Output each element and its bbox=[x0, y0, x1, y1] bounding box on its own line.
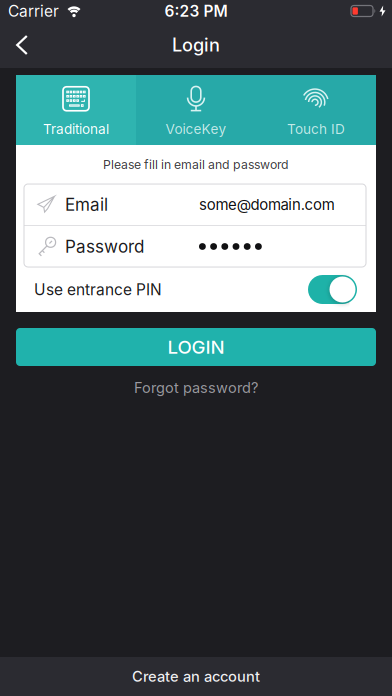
staticText: some@domain.com bbox=[199, 195, 335, 214]
button[interactable]: Password bbox=[24, 226, 366, 267]
staticText: Create an account bbox=[132, 668, 260, 685]
button[interactable]: Forgot password? bbox=[134, 379, 258, 397]
button[interactable]: Create an account bbox=[0, 657, 392, 696]
staticText: Traditional bbox=[43, 121, 109, 137]
staticText: Touch ID bbox=[287, 121, 345, 137]
button[interactable]: Touch ID bbox=[256, 75, 376, 145]
staticText: Carrier bbox=[8, 2, 59, 20]
button[interactable]: LOGIN bbox=[16, 328, 376, 366]
staticText: 6:23 PM bbox=[164, 2, 227, 20]
staticText: Password bbox=[65, 236, 144, 257]
button[interactable]: Use entrance PIN bbox=[308, 275, 357, 304]
staticText: LOGIN bbox=[167, 336, 224, 358]
staticText: VoiceKey bbox=[165, 121, 226, 137]
staticText: Forgot password? bbox=[134, 379, 258, 397]
staticText: Please fill in email and password bbox=[103, 157, 289, 172]
staticText: Email bbox=[65, 194, 108, 215]
button[interactable]: Back bbox=[0, 22, 44, 68]
button[interactable]: Email bbox=[24, 184, 366, 225]
staticText: Login bbox=[172, 34, 220, 56]
staticText: Use entrance PIN bbox=[34, 280, 162, 299]
button[interactable]: Traditional bbox=[16, 75, 136, 145]
button[interactable]: VoiceKey bbox=[136, 75, 256, 145]
